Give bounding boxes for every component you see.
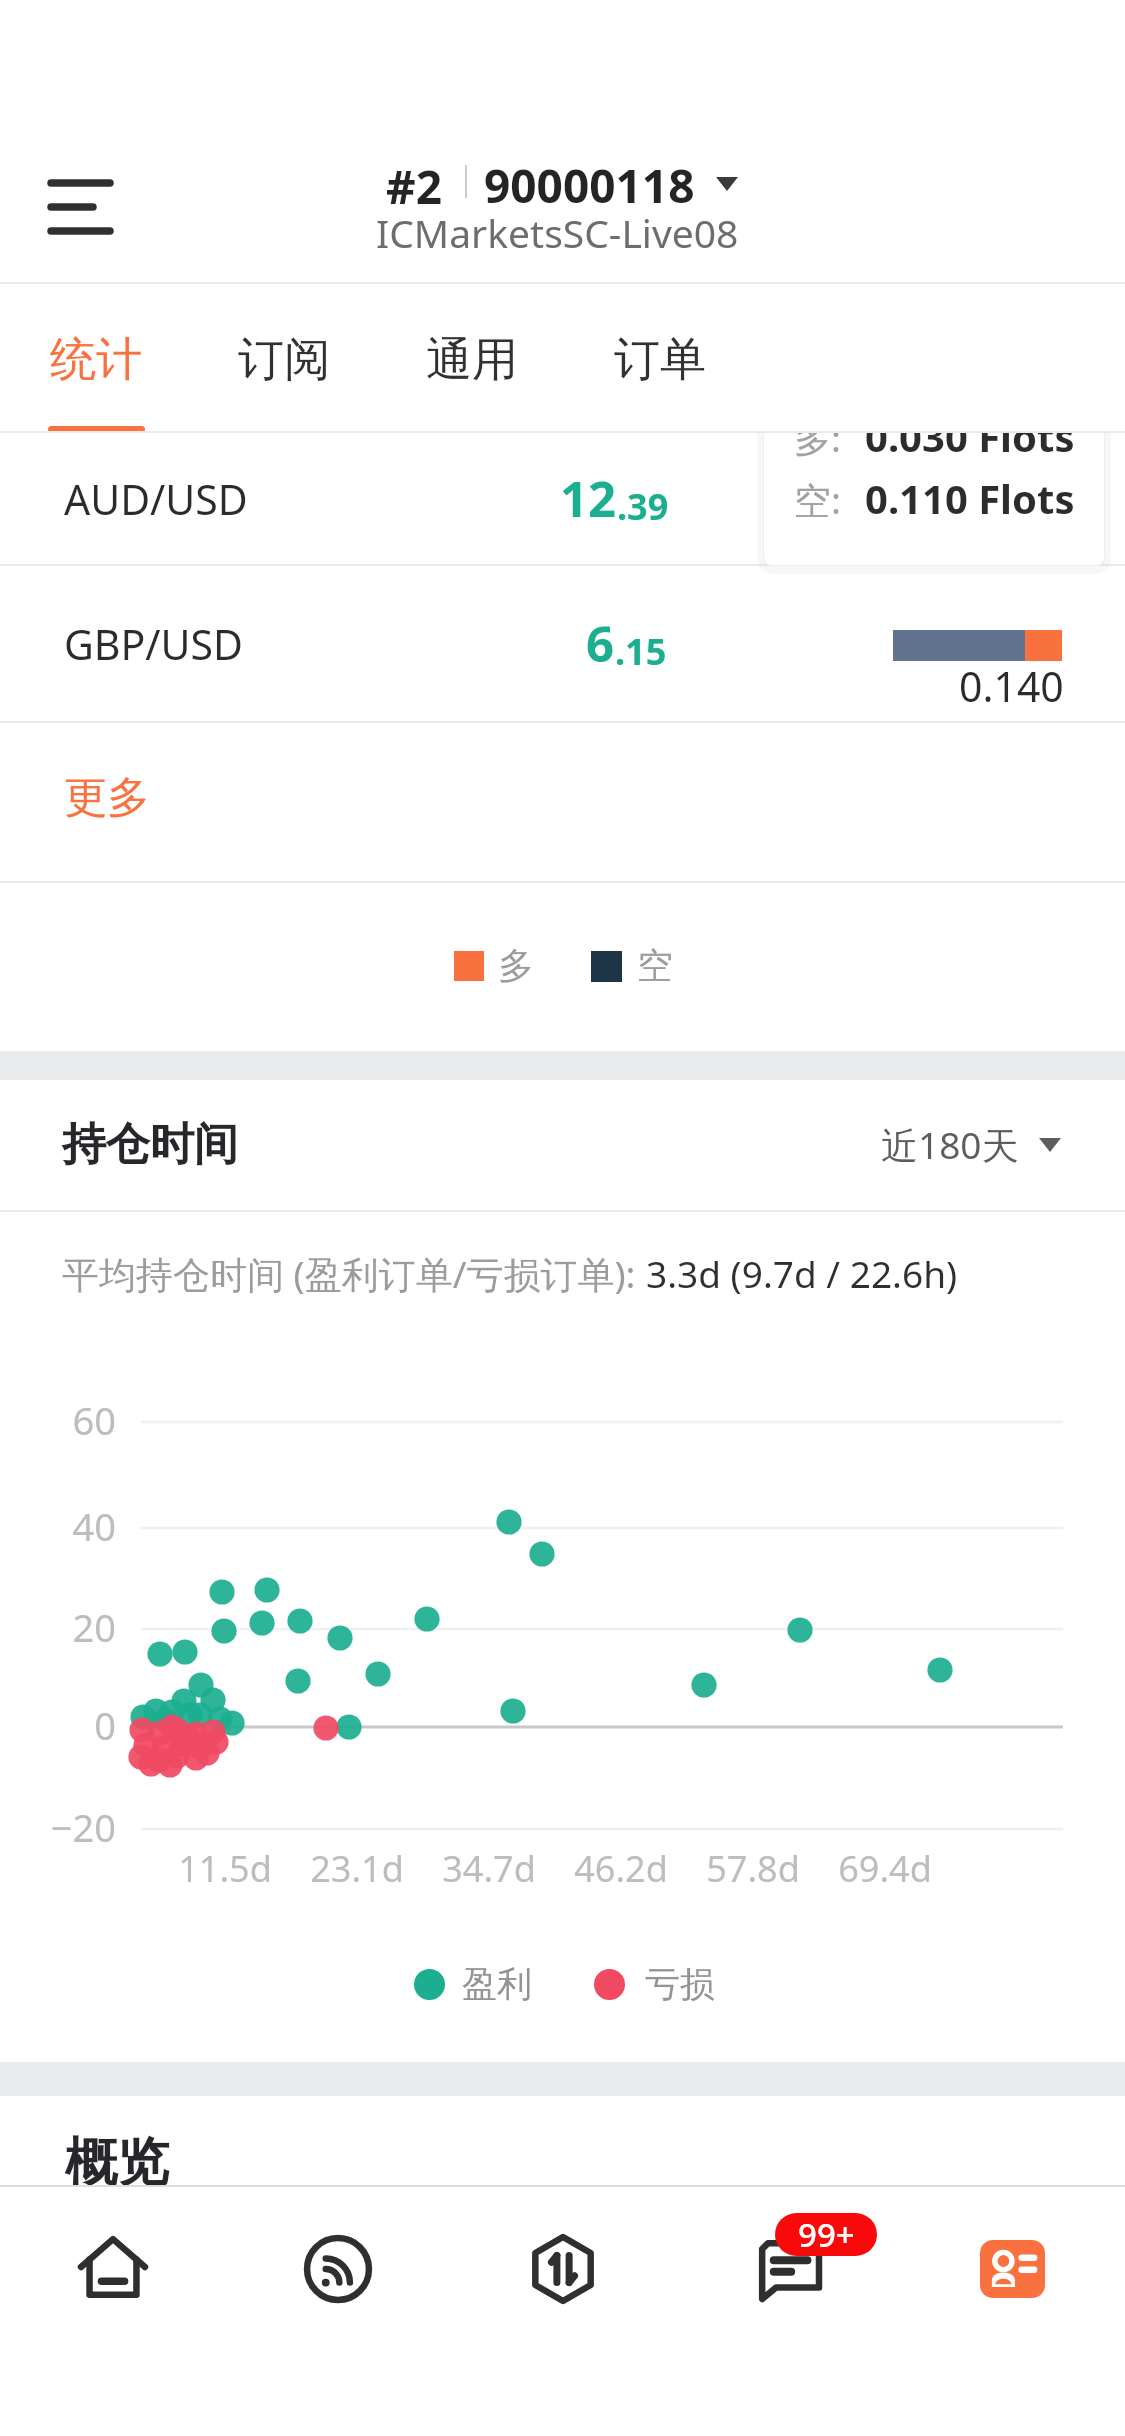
staticText: 6 — [586, 610, 615, 677]
staticText: 盈利 — [462, 1962, 532, 2006]
button[interactable]: 近180天 — [881, 1119, 1061, 1170]
staticText: 0.030 Flots — [865, 409, 1075, 463]
button[interactable]: #2 — [370, 155, 760, 211]
staticText: 订单 — [614, 331, 706, 389]
button[interactable]: GBP/USD — [0, 566, 1125, 721]
staticText: 近180天 — [881, 1119, 1019, 1170]
staticText: −20 — [3, 1801, 116, 1853]
staticText: 平均持仓时间 (盈利订单/亏损订单): — [62, 1248, 646, 1299]
button[interactable]: Menu — [21, 147, 140, 267]
button[interactable]: Profile — [900, 2187, 1125, 2351]
staticText: 12 — [560, 465, 617, 532]
staticText: 69.4d — [795, 1844, 975, 1893]
button[interactable]: Trade — [450, 2187, 675, 2351]
button[interactable]: 订单 — [590, 282, 730, 433]
staticText: 亏损 — [645, 1962, 715, 2006]
staticText: GBP/USD — [64, 616, 243, 672]
staticText: 57.8d — [663, 1844, 843, 1893]
button[interactable]: 通用 — [402, 282, 542, 433]
staticText: 空 — [637, 943, 673, 988]
staticText: 0 — [3, 1699, 116, 1751]
button[interactable]: 更多 — [0, 723, 1125, 881]
button[interactable]: Signals — [225, 2187, 450, 2351]
staticText: 通用 — [426, 331, 518, 389]
staticText: #2 — [386, 155, 443, 211]
staticText: 3.3d (9.7d / 22.6h) — [646, 1248, 958, 1298]
staticText: 0.110 Flots — [865, 471, 1075, 525]
staticText: 多 — [498, 943, 534, 988]
staticText: 20 — [3, 1601, 116, 1653]
staticText: 0.140 — [959, 658, 1064, 714]
button[interactable]: Home — [0, 2187, 225, 2351]
staticText: 概览 — [65, 2130, 169, 2196]
staticText: 60 — [3, 1394, 116, 1446]
staticText: 持仓时间 — [62, 1117, 238, 1172]
staticText: 统计 — [50, 331, 142, 389]
staticText: 23.1d — [267, 1844, 447, 1893]
staticText: 订阅 — [238, 331, 330, 389]
staticText: AUD/USD — [64, 471, 248, 527]
staticText: 多: — [794, 412, 841, 463]
button[interactable]: 统计 — [26, 282, 166, 433]
staticText: .39 — [617, 482, 669, 531]
staticText: 99+ — [798, 2213, 855, 2255]
staticText: 空: — [794, 474, 841, 525]
button[interactable]: Messages — [675, 2187, 900, 2351]
staticText: ICMarketsSC-Live08 — [376, 206, 739, 259]
staticText: .15 — [615, 627, 667, 676]
button[interactable]: 订阅 — [214, 282, 354, 433]
staticText: 34.7d — [399, 1844, 579, 1893]
staticText: 90000118 — [484, 154, 695, 210]
staticText: 11.5d — [135, 1844, 315, 1893]
staticText: 40 — [3, 1500, 116, 1552]
staticText: 46.2d — [531, 1844, 711, 1893]
staticText: 更多 — [64, 771, 150, 825]
button[interactable]: AUD/USD — [0, 433, 1125, 564]
